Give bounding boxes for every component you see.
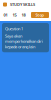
staticText: 15 bbox=[12, 12, 16, 18]
button[interactable]: Stop bbox=[31, 12, 49, 18]
staticText: Stop bbox=[35, 12, 44, 18]
staticText: Saya akan memperkenalkan diri kepada ora… bbox=[5, 33, 43, 49]
staticText: 18 bbox=[21, 12, 25, 18]
staticText: Question 1 bbox=[5, 26, 23, 31]
staticText: STUDY SKILLS bbox=[10, 2, 35, 7]
staticText: 01 bbox=[3, 12, 7, 18]
